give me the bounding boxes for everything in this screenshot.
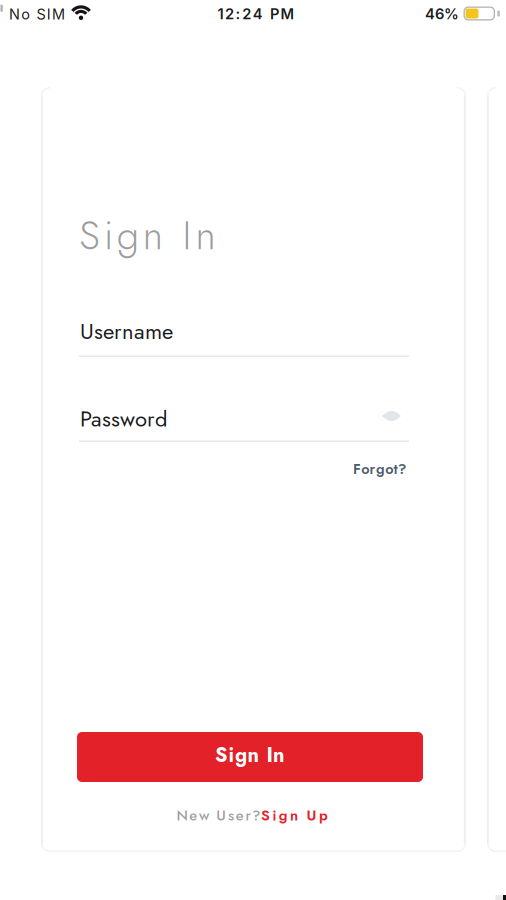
staticText: g xyxy=(117,206,139,264)
staticText: ? xyxy=(398,459,407,479)
staticText: s xyxy=(228,805,234,826)
button[interactable]: Password xyxy=(79,398,409,442)
staticText: e xyxy=(189,805,197,826)
staticText: n xyxy=(273,740,285,769)
staticText: M xyxy=(52,5,65,23)
staticText: o xyxy=(385,459,393,479)
staticText: 46% xyxy=(425,5,459,23)
staticText: ? xyxy=(252,805,261,826)
staticText: g xyxy=(376,459,385,479)
staticText: S xyxy=(79,206,100,264)
staticText: Password xyxy=(80,403,168,435)
staticText: n xyxy=(143,206,163,264)
button[interactable]: F xyxy=(353,459,407,479)
staticText: o xyxy=(361,459,369,479)
staticText: w xyxy=(199,805,209,826)
staticText: S xyxy=(261,805,270,826)
staticText: p xyxy=(319,805,328,826)
staticText: i xyxy=(272,805,276,826)
staticText: N xyxy=(9,5,20,23)
staticText: r xyxy=(370,459,376,479)
staticText: I xyxy=(266,740,272,769)
staticText: S xyxy=(37,5,46,23)
button[interactable]: Username xyxy=(79,312,409,358)
button[interactable]: S xyxy=(77,732,423,782)
staticText: 4 xyxy=(253,5,263,23)
staticText: g xyxy=(279,805,288,826)
staticText: U xyxy=(216,805,226,826)
staticText: n xyxy=(290,805,298,826)
staticText: S xyxy=(215,740,228,769)
staticText: e xyxy=(236,805,244,826)
staticText: o xyxy=(21,5,30,23)
staticText: i xyxy=(104,206,113,264)
staticText: g xyxy=(235,740,247,769)
staticText: n xyxy=(247,740,259,769)
staticText: i xyxy=(228,740,234,769)
button[interactable]: S xyxy=(261,805,328,826)
staticText: 2 xyxy=(242,5,251,23)
staticText: I xyxy=(47,5,51,23)
staticText: P xyxy=(270,5,279,23)
staticText: U xyxy=(307,805,317,826)
staticText: M xyxy=(281,5,295,23)
button[interactable]: Show password xyxy=(382,410,401,422)
staticText: Username xyxy=(80,315,173,347)
staticText: 1 xyxy=(217,5,223,23)
staticText: : xyxy=(236,5,241,23)
staticText: N xyxy=(176,805,187,826)
staticText: r xyxy=(245,805,250,826)
staticText: 2 xyxy=(225,5,234,23)
staticText: n xyxy=(195,206,215,264)
staticText: t xyxy=(393,459,397,479)
staticText: F xyxy=(353,459,361,479)
staticText: I xyxy=(182,206,191,264)
